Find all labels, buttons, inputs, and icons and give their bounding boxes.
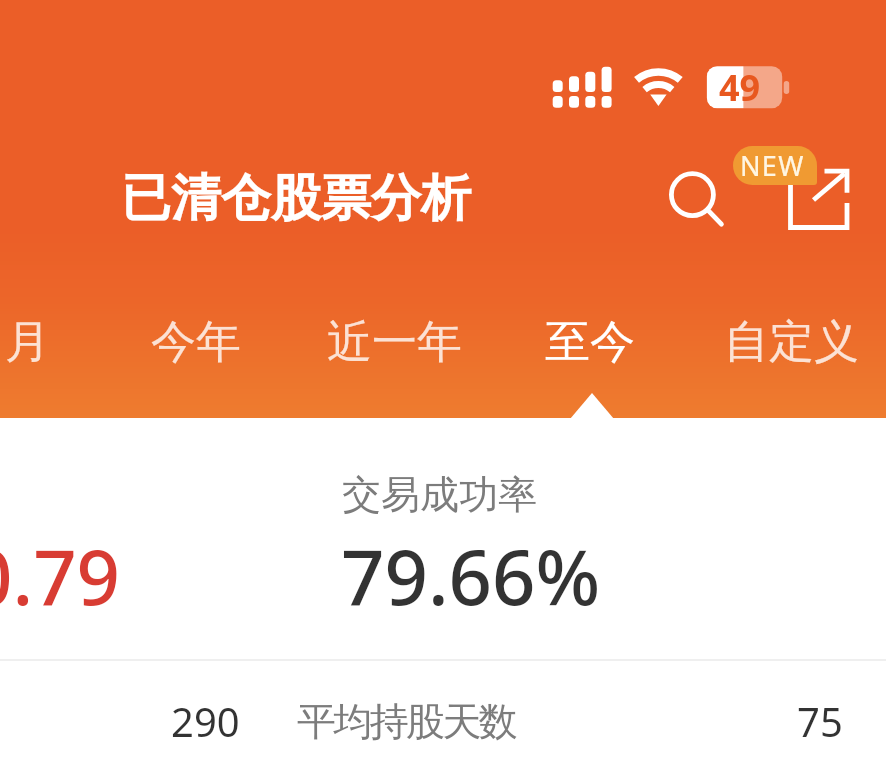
staticText: NEW	[740, 147, 805, 184]
button[interactable]: 自定义	[693, 305, 886, 379]
staticText: 平均持股天数	[297, 697, 515, 746]
staticText: 75	[797, 694, 843, 748]
staticText: 交易成功率	[342, 470, 537, 519]
staticText: 今年	[151, 314, 241, 371]
staticText: 290	[171, 694, 240, 748]
staticText: 0.79	[0, 524, 121, 628]
staticText: 79.66%	[341, 524, 601, 628]
button[interactable]: New feature	[733, 146, 817, 185]
staticText: 近一年	[327, 314, 462, 371]
button[interactable]: Share	[786, 164, 854, 232]
staticText: 自定义	[724, 314, 859, 371]
button[interactable]: 交易成功率	[0, 419, 886, 659]
button[interactable]: 290	[0, 661, 886, 772]
button[interactable]: 今年	[98, 305, 294, 379]
button[interactable]: 近一年	[296, 305, 492, 379]
staticText: 月	[5, 314, 50, 371]
staticText: 49	[719, 63, 761, 112]
button[interactable]: Search	[658, 160, 728, 230]
button[interactable]: 至今	[492, 305, 688, 379]
staticText: 至今	[545, 314, 635, 371]
button[interactable]: 月	[0, 305, 125, 379]
staticText: 已清仓股票分析	[121, 167, 471, 230]
